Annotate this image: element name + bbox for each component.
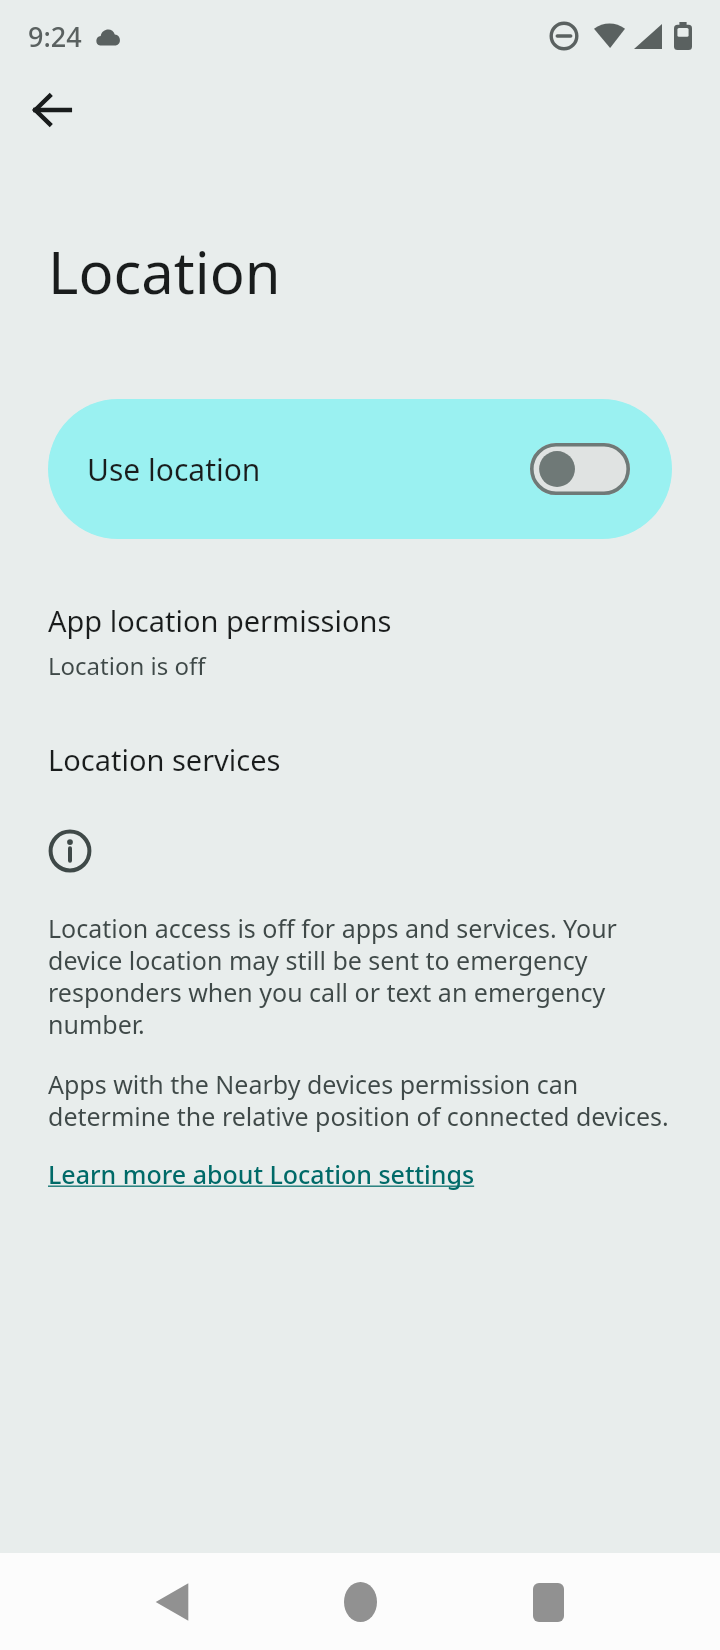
staticText: App location permissions	[48, 601, 392, 640]
staticText: Location services	[48, 740, 281, 779]
button[interactable]: Back	[14, 72, 90, 148]
other: Use location toggle, off	[530, 443, 630, 495]
staticText: Apps with the Nearby devices permission …	[48, 1067, 672, 1133]
button[interactable]: Learn more about Location settings	[48, 1157, 475, 1191]
button[interactable]: Back	[130, 1560, 214, 1644]
button[interactable]: Home	[318, 1560, 402, 1644]
button[interactable]: Use location	[48, 399, 672, 539]
button[interactable]: App location permissions	[0, 601, 720, 682]
staticText: Learn more about Location settings	[48, 1157, 475, 1191]
button[interactable]: Location services	[0, 740, 720, 779]
staticText: Use location	[87, 449, 530, 490]
staticText: Location access is off for apps and serv…	[48, 911, 672, 1041]
staticText: Location is off	[48, 649, 206, 682]
button[interactable]: Recent apps	[506, 1560, 590, 1644]
staticText: 9:24	[28, 18, 82, 55]
staticText: Location	[48, 232, 281, 311]
